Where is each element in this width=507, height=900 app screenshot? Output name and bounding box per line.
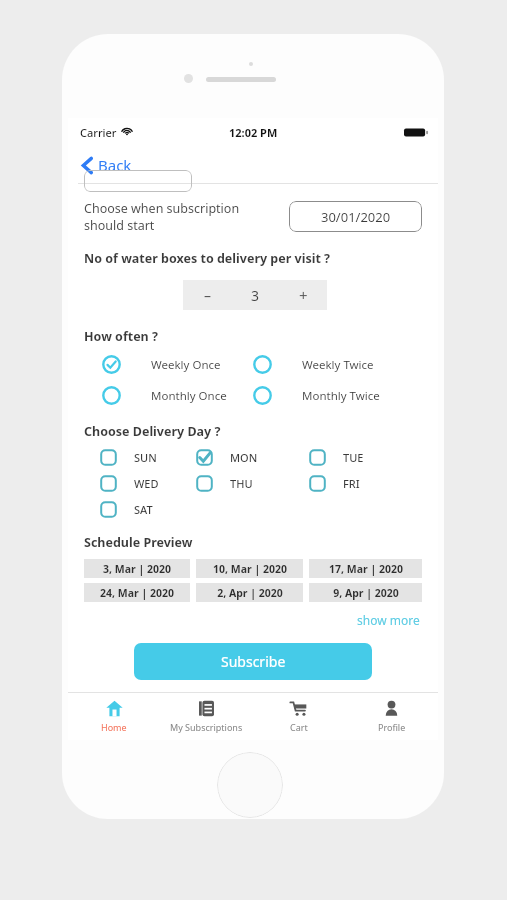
button[interactable]: Back xyxy=(78,151,136,179)
staticText: MON xyxy=(230,450,258,465)
other: Cart xyxy=(290,700,307,717)
button[interactable]: 24, Mar | 2020 xyxy=(84,583,190,602)
staticText: – xyxy=(204,286,211,305)
staticText: Home xyxy=(101,721,127,733)
staticText: Profile xyxy=(378,721,406,733)
staticText: Subscribe xyxy=(221,652,286,671)
other: Home xyxy=(106,700,123,717)
button[interactable]: 30/01/2020 xyxy=(289,201,422,232)
staticText: My Subscriptions xyxy=(170,721,243,733)
button[interactable]: SAT xyxy=(84,501,196,518)
staticText: Carrier xyxy=(80,125,117,140)
staticText: Schedule Preview xyxy=(84,534,193,551)
button[interactable]: Profile xyxy=(345,693,438,740)
button[interactable]: MON xyxy=(196,449,309,466)
staticText: 24, Mar | 2020 xyxy=(100,586,174,600)
button[interactable]: THU xyxy=(196,475,309,492)
staticText: FRI xyxy=(343,476,360,491)
button[interactable]: 17, Mar | 2020 xyxy=(309,559,422,578)
button[interactable]: Increase xyxy=(279,280,327,310)
staticText: THU xyxy=(230,476,253,491)
staticText: TUE xyxy=(343,450,364,465)
button[interactable]: WED xyxy=(84,475,196,492)
staticText: 10, Mar | 2020 xyxy=(213,562,287,576)
button[interactable]: Monthly Once xyxy=(84,386,253,405)
staticText: Weekly Twice xyxy=(302,357,374,373)
button[interactable]: TUE xyxy=(309,449,422,466)
staticText: 3 xyxy=(251,286,260,305)
staticText: SUN xyxy=(134,450,157,465)
button[interactable]: Weekly Once xyxy=(84,355,253,374)
button[interactable]: 10, Mar | 2020 xyxy=(196,559,303,578)
button[interactable]: Weekly Twice xyxy=(253,355,422,374)
staticText: Cart xyxy=(290,721,308,733)
staticText: Monthly Once xyxy=(151,388,227,404)
button[interactable]: FRI xyxy=(309,475,422,492)
button[interactable]: My Subscriptions xyxy=(160,693,252,740)
staticText: 9, Apr | 2020 xyxy=(333,586,399,600)
staticText: Back xyxy=(98,155,132,175)
staticText: Choose when subscription should start xyxy=(84,200,289,233)
staticText: Choose Delivery Day ? xyxy=(84,423,221,440)
button[interactable]: Cart xyxy=(252,693,345,740)
staticText: 2, Apr | 2020 xyxy=(217,586,283,600)
staticText: Weekly Once xyxy=(151,357,221,373)
button[interactable]: 3, Mar | 2020 xyxy=(84,559,190,578)
staticText: + xyxy=(299,285,308,305)
staticText: show more xyxy=(357,612,420,628)
other: Profile xyxy=(383,700,400,717)
button[interactable]: show more xyxy=(355,610,422,630)
button[interactable]: Monthly Twice xyxy=(253,386,422,405)
staticText: WED xyxy=(134,476,159,491)
staticText: SAT xyxy=(134,502,153,517)
staticText: 30/01/2020 xyxy=(321,208,391,226)
button[interactable]: Home xyxy=(68,693,160,740)
other: My Subscriptions xyxy=(198,700,215,717)
staticText: How often ? xyxy=(84,328,158,345)
button[interactable]: 9, Apr | 2020 xyxy=(309,583,422,602)
staticText: 12:02 PM xyxy=(229,125,278,140)
staticText: No of water boxes to delivery per visit … xyxy=(84,250,331,267)
staticText: Monthly Twice xyxy=(302,388,380,404)
button[interactable]: Decrease xyxy=(183,280,231,310)
button[interactable]: SUN xyxy=(84,449,196,466)
staticText: 17, Mar | 2020 xyxy=(329,562,403,576)
button[interactable]: 2, Apr | 2020 xyxy=(196,583,303,602)
button[interactable]: Subscribe xyxy=(134,643,372,680)
staticText: 3, Mar | 2020 xyxy=(103,562,171,576)
